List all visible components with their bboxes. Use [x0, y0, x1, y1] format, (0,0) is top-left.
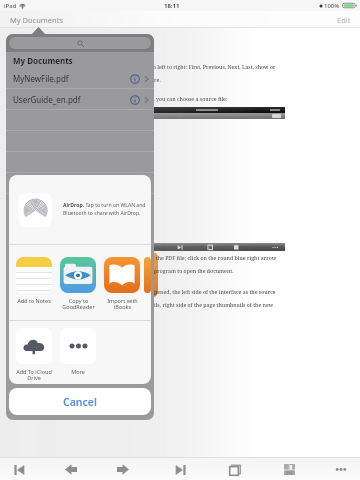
- button[interactable]: Cancel: [9, 388, 151, 415]
- staticText: ", you can choose a source file:: [151, 95, 228, 102]
- staticText: More: [71, 368, 85, 375]
- button[interactable]: Last page: [169, 459, 191, 480]
- staticText: Copy to GoodReader: [62, 297, 95, 311]
- button[interactable]: UserGuide_en.pdf: [6, 89, 154, 110]
- staticText: 100%: [324, 2, 340, 10]
- button[interactable]: Add To iCloud Drive: [12, 321, 56, 384]
- staticText: UserGuide_en.pdf: [13, 94, 81, 105]
- button[interactable]: Search: [9, 37, 151, 49]
- staticText: Add to Notes: [17, 297, 51, 304]
- button[interactable]: More: [56, 321, 100, 384]
- button[interactable]: Save: [278, 459, 300, 480]
- button[interactable]: More options: [330, 459, 352, 480]
- staticText: My Documents: [13, 55, 73, 66]
- staticText: ails, right side of the page thumbnails …: [151, 301, 274, 308]
- staticText: 18:11: [164, 2, 180, 10]
- staticText: AirDrop. Tap to turn on WLAN and Bluetoo…: [63, 202, 151, 217]
- staticText: n the PDF file; click on the round blue …: [151, 254, 277, 261]
- button[interactable]: Copy to GoodReader: [56, 245, 100, 320]
- button[interactable]: Edit: [337, 15, 351, 25]
- staticText: My Documents: [10, 15, 64, 25]
- staticText: iPad: [4, 2, 17, 10]
- staticText: Edit: [337, 15, 351, 25]
- button[interactable]: Page view: [224, 459, 246, 480]
- staticText: Add To iCloud Drive: [16, 368, 52, 382]
- button[interactable]: Previous page: [60, 459, 82, 480]
- button[interactable]: Next page: [112, 459, 134, 480]
- other: Info: [130, 95, 140, 105]
- button[interactable]: My Documents: [10, 15, 64, 25]
- button[interactable]: Import with iBooks: [100, 245, 144, 320]
- staticText: Cancel: [63, 395, 97, 409]
- button[interactable]: First page: [8, 459, 30, 480]
- staticText: opened, the left side of the interface a…: [151, 288, 276, 295]
- staticText: l program to open the document.: [151, 267, 234, 274]
- staticText: ore.: [151, 76, 161, 83]
- staticText: Import with iBooks: [107, 297, 138, 311]
- staticText: MyNewFile.pdf: [13, 73, 69, 84]
- button[interactable]: AirDrop. Tap to turn on WLAN and Bluetoo…: [9, 175, 151, 244]
- button[interactable]: [144, 245, 151, 320]
- staticText: m left to right: First, Previous, Next, …: [151, 63, 276, 70]
- other: Info: [130, 74, 140, 84]
- button[interactable]: MyNewFile.pdf: [6, 68, 154, 89]
- button[interactable]: Add to Notes: [12, 245, 56, 320]
